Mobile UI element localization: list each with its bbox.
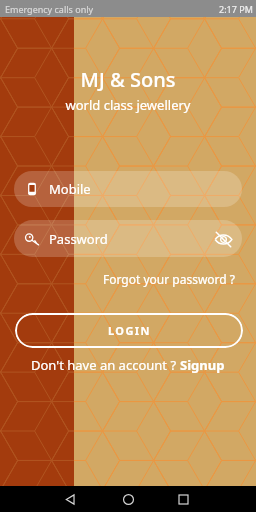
button[interactable]: LOGIN — [15, 313, 243, 348]
staticText: Password — [49, 230, 108, 248]
staticText: world class jewellery — [0, 96, 256, 114]
button[interactable]: Password — [14, 220, 242, 257]
staticText: Mobile — [49, 180, 91, 198]
button[interactable]: Back — [58, 487, 82, 511]
button[interactable]: Show password — [206, 222, 240, 256]
button[interactable]: Recent apps — [171, 487, 195, 511]
button[interactable]: Mobile — [14, 171, 242, 207]
staticText: 2:17 PM — [219, 3, 253, 15]
staticText: Emergency calls only — [5, 3, 94, 15]
button[interactable]: Forgot your password ? — [103, 271, 236, 287]
button[interactable]: Signup — [180, 356, 225, 374]
staticText: Don't have an account ? — [31, 356, 180, 374]
staticText: MJ & Sons — [0, 66, 256, 93]
button[interactable]: Home — [116, 487, 140, 511]
staticText: LOGIN — [108, 323, 151, 338]
